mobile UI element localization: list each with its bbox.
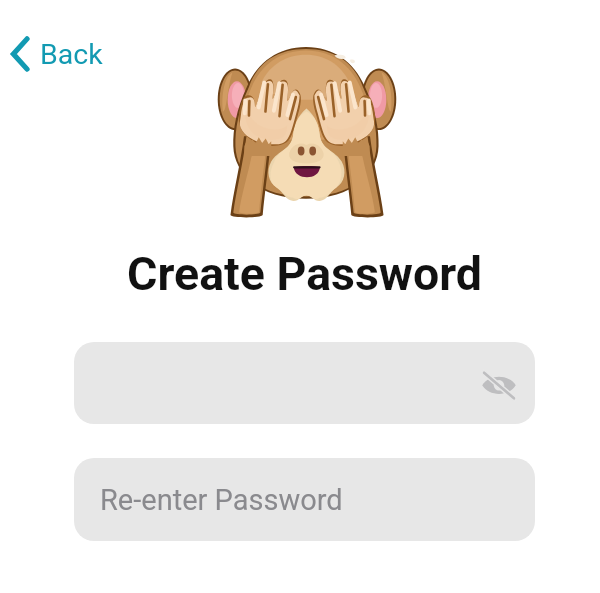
button[interactable]: Show password [74, 342, 535, 424]
button[interactable]: Re-enter Password [74, 458, 535, 541]
staticText: Re-enter Password [100, 483, 343, 517]
button[interactable]: Show password [481, 365, 517, 401]
staticText: Create Password [127, 247, 482, 301]
button[interactable]: Back [5, 32, 107, 76]
staticText: Back [40, 38, 103, 71]
